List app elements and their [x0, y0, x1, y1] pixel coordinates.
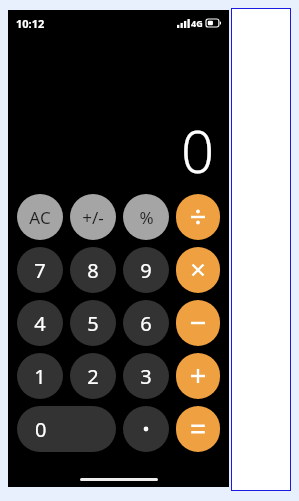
button[interactable]: Nine [123, 247, 169, 293]
staticText: 0 [181, 111, 215, 190]
button[interactable]: Plus minus [70, 194, 116, 240]
staticText: % [139, 206, 154, 229]
button[interactable]: All clear [17, 194, 63, 240]
button[interactable]: Equals [176, 406, 220, 452]
button[interactable]: Seven [17, 247, 63, 293]
button[interactable]: Four [17, 300, 63, 346]
staticText: 2 [87, 363, 99, 390]
staticText: 3 [140, 363, 152, 390]
button[interactable]: Divide [176, 194, 220, 240]
button[interactable]: Subtract [176, 300, 220, 346]
staticText: AC [29, 206, 51, 229]
staticText: 5 [87, 310, 99, 337]
staticText: 4 [34, 310, 46, 337]
staticText: 0 [35, 416, 47, 443]
button[interactable]: Add [176, 353, 220, 399]
staticText: 7 [34, 257, 46, 284]
button[interactable]: Multiply [176, 247, 220, 293]
button[interactable]: Three [123, 353, 169, 399]
staticText: 8 [87, 257, 99, 284]
button[interactable]: One [17, 353, 63, 399]
button[interactable]: Eight [70, 247, 116, 293]
staticText: +/- [82, 206, 104, 229]
staticText: 9 [140, 257, 152, 284]
button[interactable]: 0 [17, 406, 116, 452]
staticText: 1 [34, 363, 46, 390]
button[interactable]: Percent [123, 194, 169, 240]
staticText: 6 [140, 310, 152, 337]
staticText: 10:12 [16, 16, 45, 31]
staticText: 4G [191, 17, 203, 29]
button[interactable]: Five [70, 300, 116, 346]
button[interactable]: Six [123, 300, 169, 346]
button[interactable]: Two [70, 353, 116, 399]
button[interactable]: Decimal point [123, 406, 169, 452]
